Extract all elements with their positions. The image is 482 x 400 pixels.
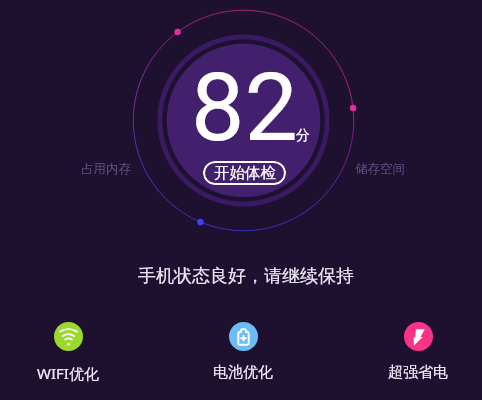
button[interactable]: Super power save: [374, 322, 462, 382]
button[interactable]: Battery optimize: [199, 322, 287, 382]
button[interactable]: WIFI optimize: [24, 322, 112, 383]
staticText: 超强省电: [388, 363, 448, 382]
other: WIFI optimize: [54, 322, 83, 351]
staticText: 占用内存: [81, 161, 131, 177]
staticText: WIFI优化: [37, 363, 99, 383]
staticText: 储存空间: [355, 161, 405, 177]
button[interactable]: 开始体检: [203, 161, 286, 185]
staticText: 电池优化: [213, 363, 273, 382]
other: Super power save: [404, 322, 433, 351]
staticText: 82: [191, 52, 298, 163]
staticText: 分: [296, 127, 310, 145]
staticText: 开始体检: [214, 163, 276, 183]
other: Battery optimize: [229, 322, 258, 351]
staticText: 手机状态良好，请继续保持: [138, 265, 354, 288]
